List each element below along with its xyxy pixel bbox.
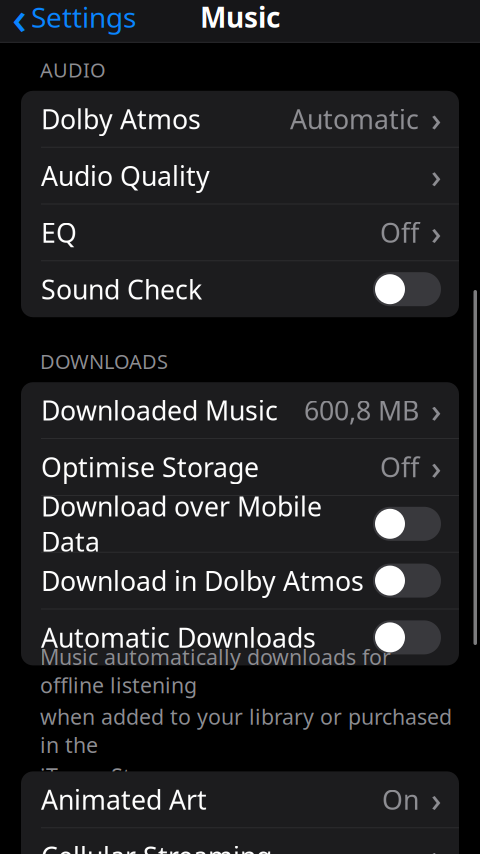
- staticText: EQ: [41, 215, 77, 250]
- staticText: Download over Mobile Data: [41, 488, 322, 559]
- staticText: DOWNLOADS: [40, 348, 168, 374]
- staticText: ›: [431, 446, 441, 488]
- button[interactable]: Animated Art: [21, 771, 459, 827]
- button[interactable]: Downloaded Music: [21, 382, 459, 438]
- staticText: Audio Quality: [41, 158, 210, 193]
- staticText: Music automatically downloads for offlin…: [40, 643, 391, 699]
- button[interactable]: Download over Mobile Data: [21, 496, 459, 552]
- staticText: iTunes Store.: [40, 762, 170, 790]
- button[interactable]: Cellular Streaming: [21, 828, 459, 854]
- staticText: Off: [380, 449, 419, 485]
- staticText: ›: [431, 154, 441, 197]
- button[interactable]: ‹: [0, 0, 146, 39]
- staticText: Sound Check: [41, 271, 202, 307]
- staticText: AUDIO: [40, 56, 106, 83]
- staticText: Optimise Storage: [41, 449, 259, 485]
- staticText: Dolby Atmos: [41, 101, 201, 136]
- staticText: Download in Dolby Atmos: [41, 563, 364, 598]
- staticText: when added to your library or purchased …: [40, 702, 452, 759]
- button[interactable]: EQ: [21, 204, 459, 260]
- staticText: ›: [431, 389, 441, 431]
- button[interactable]: Automatic Downloads: [21, 609, 459, 665]
- staticText: ›: [431, 98, 441, 140]
- button[interactable]: Download in Dolby Atmos: [21, 553, 459, 609]
- staticText: Automatic: [290, 101, 419, 136]
- staticText: Automatic Downloads: [41, 620, 316, 655]
- staticText: ›: [431, 778, 441, 821]
- staticText: Off: [380, 215, 419, 250]
- staticText: ›: [431, 211, 441, 254]
- staticText: Music: [200, 0, 280, 35]
- button[interactable]: Audio Quality: [21, 148, 459, 204]
- staticText: ‹: [12, 0, 27, 47]
- staticText: Settings: [31, 0, 136, 35]
- staticText: 600,8 MB: [304, 392, 419, 428]
- button[interactable]: Optimise Storage: [21, 439, 459, 495]
- button[interactable]: Sound Check: [21, 261, 459, 317]
- staticText: Downloaded Music: [41, 392, 278, 428]
- staticText: Cellular Streaming: [41, 838, 272, 854]
- staticText: Animated Art: [41, 782, 207, 817]
- staticText: On: [382, 782, 419, 817]
- staticText: ›: [431, 835, 441, 854]
- button[interactable]: Dolby Atmos: [21, 91, 459, 147]
